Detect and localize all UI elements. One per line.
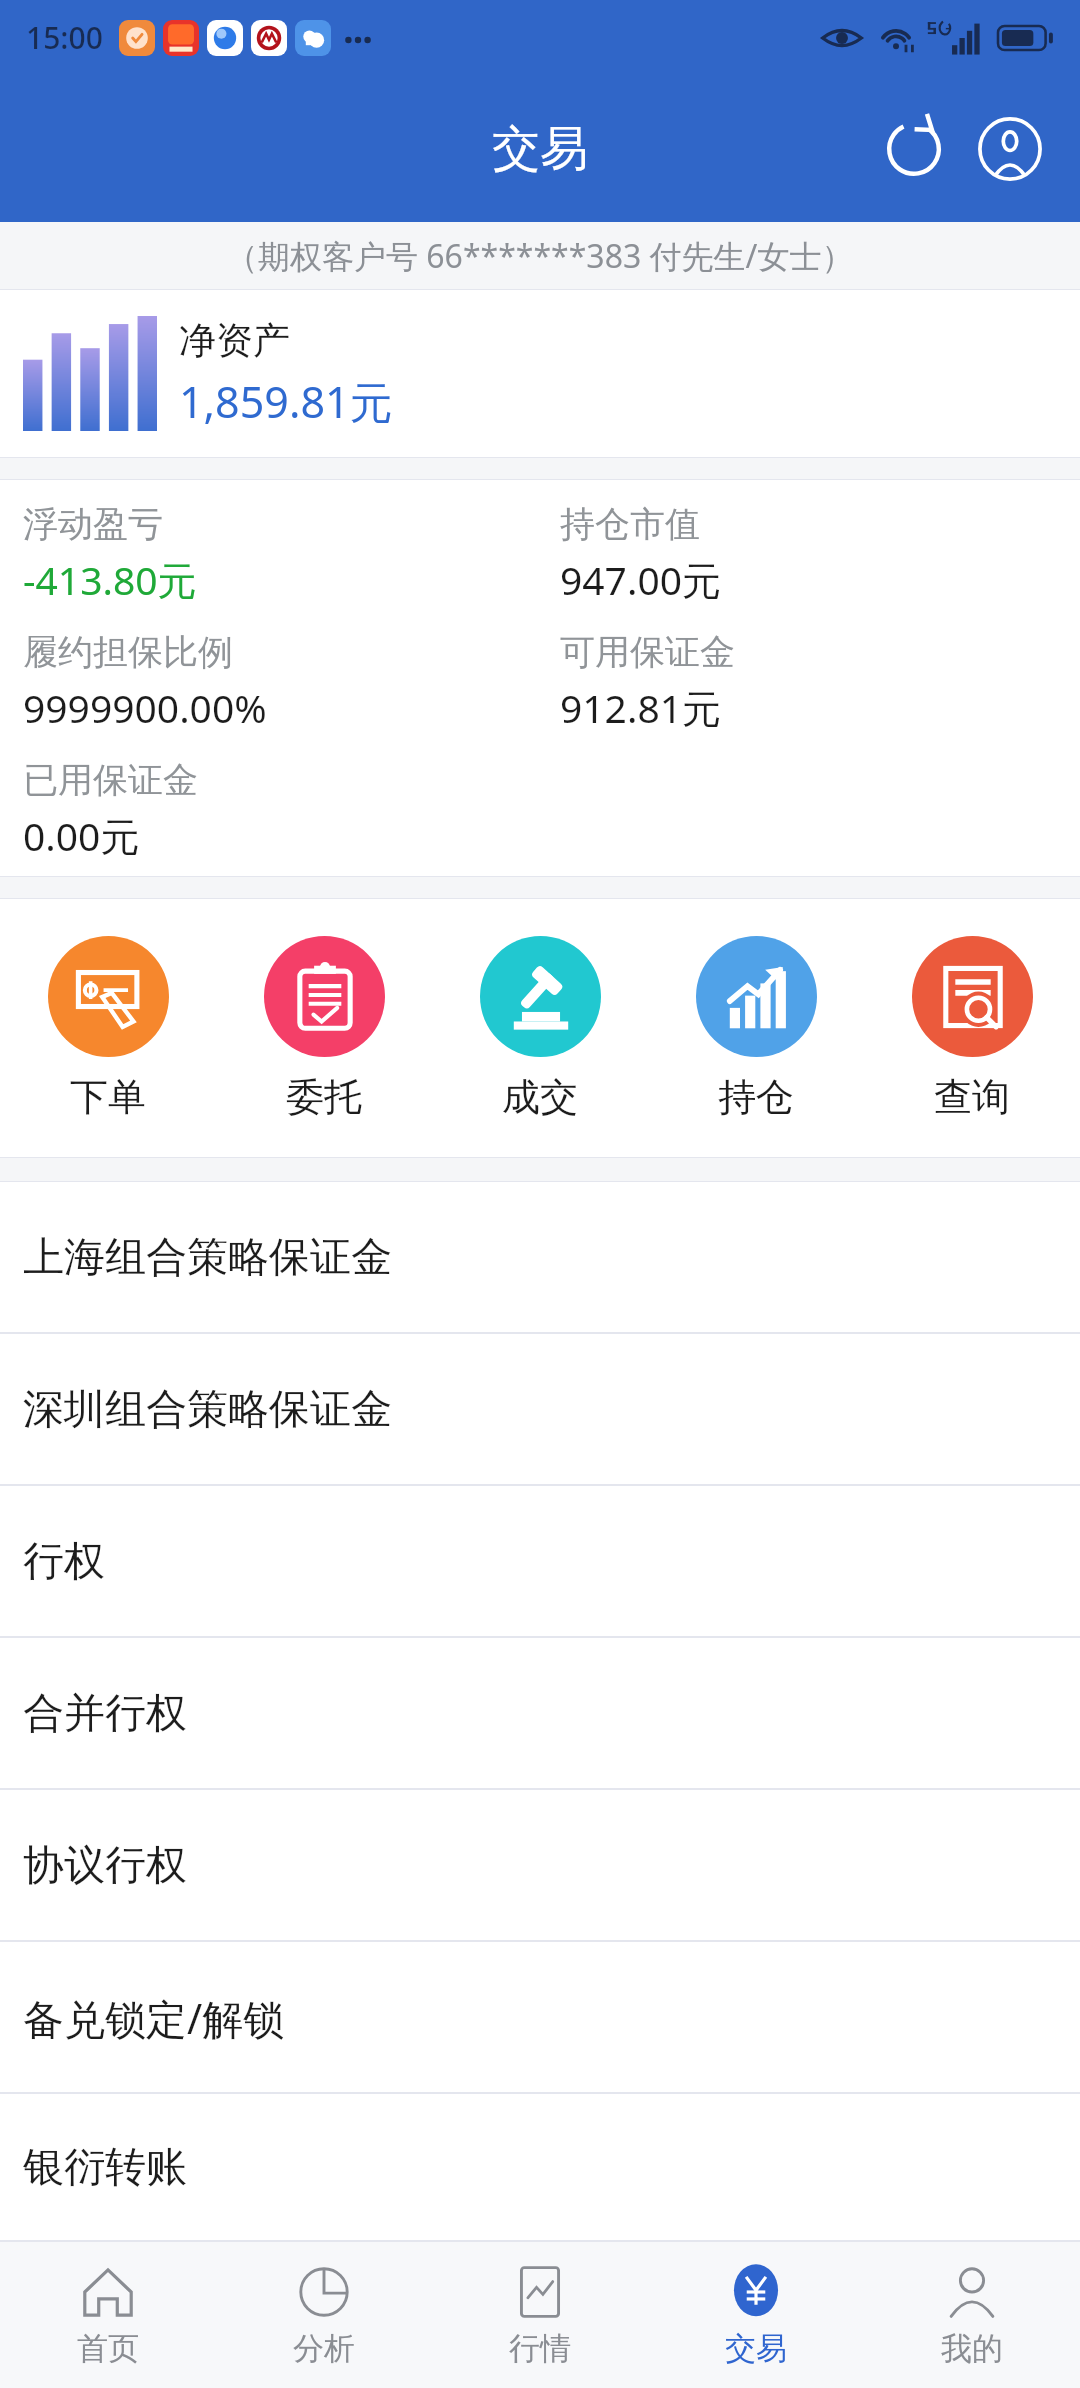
button[interactable]: 上海组合策略保证金 [0, 1182, 1080, 1334]
staticText: -413.80元 [23, 553, 197, 606]
button[interactable]: 交易 [648, 2242, 864, 2388]
staticText: 深圳组合策略保证金 [23, 1384, 392, 1436]
staticText: 协议行权 [23, 1840, 187, 1892]
staticText: 912.81元 [560, 681, 721, 734]
staticText: 15:00 [26, 17, 103, 58]
button[interactable]: 备兑锁定/解锁 [0, 1942, 1080, 2094]
staticText: 成交 [502, 1073, 578, 1121]
button[interactable]: 净资产 [0, 290, 1080, 457]
button[interactable]: Account [962, 101, 1058, 197]
button[interactable]: 协议行权 [0, 1790, 1080, 1942]
button[interactable]: 行权 [0, 1486, 1080, 1638]
button[interactable]: 行情 [432, 2242, 648, 2388]
staticText: 下单 [70, 1073, 146, 1121]
button[interactable]: 首页 [0, 2242, 216, 2388]
staticText: 行情 [509, 2329, 571, 2368]
button[interactable]: （期权客户号 66*******383 付先生/女士） [0, 222, 1080, 290]
staticText: 947.00元 [560, 553, 721, 606]
staticText: 分析 [293, 2329, 355, 2368]
staticText: 银衍转账 [23, 2142, 187, 2194]
button[interactable]: 下单 [0, 899, 216, 1157]
staticText: 合并行权 [23, 1688, 187, 1740]
staticText: 交易 [725, 2329, 787, 2368]
button[interactable]: 深圳组合策略保证金 [0, 1334, 1080, 1486]
button[interactable]: Refresh [866, 101, 962, 197]
staticText: 9999900.00% [23, 681, 267, 734]
staticText: 可用保证金 [560, 630, 735, 674]
button[interactable]: 委托 [216, 899, 432, 1157]
button[interactable]: 我的 [864, 2242, 1080, 2388]
staticText: 持仓市值 [560, 502, 700, 546]
button[interactable]: 银衍转账 [0, 2094, 1080, 2242]
staticText: 委托 [286, 1073, 362, 1121]
staticText: 1,859.81元 [179, 372, 393, 431]
staticText: 已用保证金 [23, 758, 198, 802]
button[interactable]: 查询 [864, 899, 1080, 1157]
staticText: 行权 [23, 1536, 105, 1588]
button[interactable]: 分析 [216, 2242, 432, 2388]
staticText: 首页 [77, 2329, 139, 2368]
button[interactable]: 合并行权 [0, 1638, 1080, 1790]
staticText: 备兑锁定/解锁 [23, 1990, 285, 2046]
staticText: 持仓 [718, 1073, 794, 1121]
staticText: 我的 [941, 2329, 1003, 2368]
staticText: 净资产 [179, 317, 290, 364]
staticText: 履约担保比例 [23, 630, 233, 674]
staticText: 查询 [934, 1073, 1010, 1121]
staticText: 0.00元 [23, 809, 140, 862]
button[interactable]: 持仓 [648, 899, 864, 1157]
staticText: （期权客户号 66*******383 付先生/女士） [226, 234, 854, 278]
staticText: 浮动盈亏 [23, 502, 163, 546]
staticText: 上海组合策略保证金 [23, 1232, 392, 1284]
button[interactable]: 成交 [432, 899, 648, 1157]
staticText: 交易 [492, 119, 588, 179]
